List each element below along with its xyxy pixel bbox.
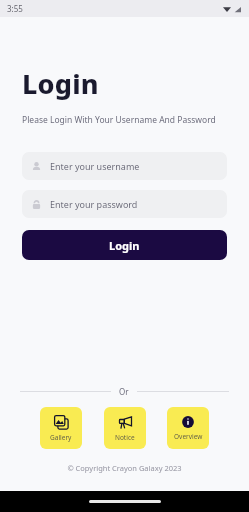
staticText: © Copyright Crayon Galaxy 2023	[0, 463, 249, 473]
staticText: Login	[109, 238, 140, 253]
staticText: Notice	[115, 433, 135, 442]
button[interactable]: Gallery	[40, 407, 82, 449]
staticText: Or	[119, 386, 129, 397]
staticText: Enter your username	[50, 160, 140, 172]
staticText: Please Login With Your Username And Pass…	[22, 114, 216, 126]
button[interactable]: Overview	[167, 407, 209, 449]
staticText: Login	[22, 65, 99, 102]
other: Notice	[118, 415, 133, 430]
staticText: Enter your password	[50, 198, 138, 210]
staticText: Overview	[174, 432, 203, 441]
button[interactable]: Login	[22, 230, 227, 260]
staticText: 3:55	[7, 3, 23, 14]
staticText: Gallery	[50, 433, 72, 442]
button[interactable]: Notice	[104, 407, 146, 449]
button[interactable]: Enter your username	[22, 152, 227, 180]
other: Gallery	[54, 415, 69, 430]
button[interactable]: Enter your password	[22, 190, 227, 218]
other: Overview	[181, 415, 195, 429]
